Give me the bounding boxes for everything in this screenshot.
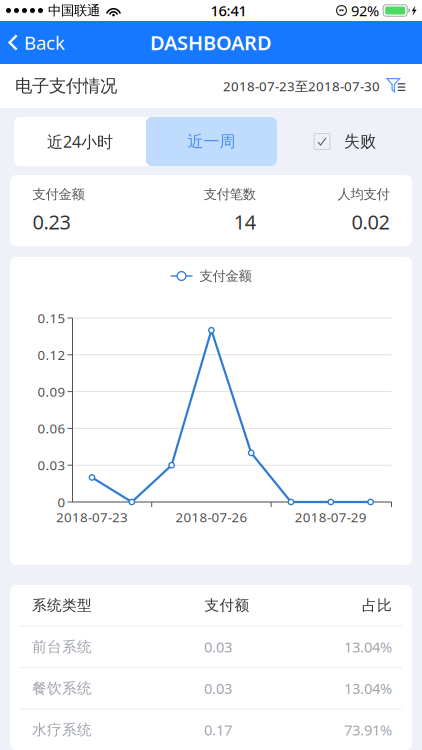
staticText: 支付金额 bbox=[33, 186, 85, 202]
staticText: 0 bbox=[57, 493, 65, 511]
staticText: 0.12 bbox=[37, 346, 65, 364]
staticText: 16:41 bbox=[210, 1, 246, 20]
staticText: 0.03 bbox=[204, 637, 232, 656]
staticText: 支付额 bbox=[204, 596, 249, 614]
staticText: 0.03 bbox=[204, 678, 232, 698]
button[interactable]: Back bbox=[0, 21, 75, 64]
button[interactable]: Filter bbox=[380, 76, 422, 96]
staticText: Back bbox=[24, 30, 65, 55]
staticText: 电子支付情况 bbox=[15, 75, 117, 97]
staticText: 餐饮系统 bbox=[32, 679, 92, 697]
staticText: 支付金额 bbox=[199, 268, 251, 284]
staticText: 13.04% bbox=[344, 678, 392, 698]
staticText: 人均支付 bbox=[337, 186, 389, 202]
staticText: 近一周 bbox=[187, 132, 235, 151]
staticText: 近24小时 bbox=[47, 131, 113, 152]
button[interactable]: 失败 bbox=[314, 120, 376, 163]
staticText: 73.91% bbox=[344, 720, 392, 739]
staticText: DASHBOARD bbox=[150, 29, 272, 56]
staticText: 92% bbox=[351, 1, 379, 20]
button[interactable]: 近一周 bbox=[146, 117, 277, 166]
staticText: 14 bbox=[234, 208, 256, 235]
staticText: 2018-07-23至2018-07-30 bbox=[223, 77, 380, 95]
staticText: 0.02 bbox=[351, 208, 389, 235]
staticText: 0.15 bbox=[37, 309, 65, 327]
staticText: 水疗系统 bbox=[32, 721, 92, 739]
staticText: 0.17 bbox=[204, 720, 232, 739]
staticText: 0.23 bbox=[33, 208, 71, 235]
staticText: 0.09 bbox=[37, 383, 65, 400]
staticText: 0.03 bbox=[37, 456, 65, 474]
staticText: 0.06 bbox=[37, 419, 65, 437]
staticText: 前台系统 bbox=[32, 638, 92, 656]
staticText: 13.04% bbox=[344, 637, 392, 656]
staticText: 2018-07-23 bbox=[56, 508, 128, 526]
staticText: 支付笔数 bbox=[204, 186, 256, 202]
staticText: 系统类型 bbox=[32, 596, 92, 614]
staticText: 2018-07-26 bbox=[175, 508, 247, 526]
staticText: 中国联通 bbox=[48, 2, 100, 19]
staticText: 2018-07-29 bbox=[295, 508, 367, 526]
button[interactable]: 近24小时 bbox=[14, 117, 146, 166]
staticText: 占比 bbox=[362, 596, 392, 614]
staticText: 失败 bbox=[344, 132, 376, 151]
